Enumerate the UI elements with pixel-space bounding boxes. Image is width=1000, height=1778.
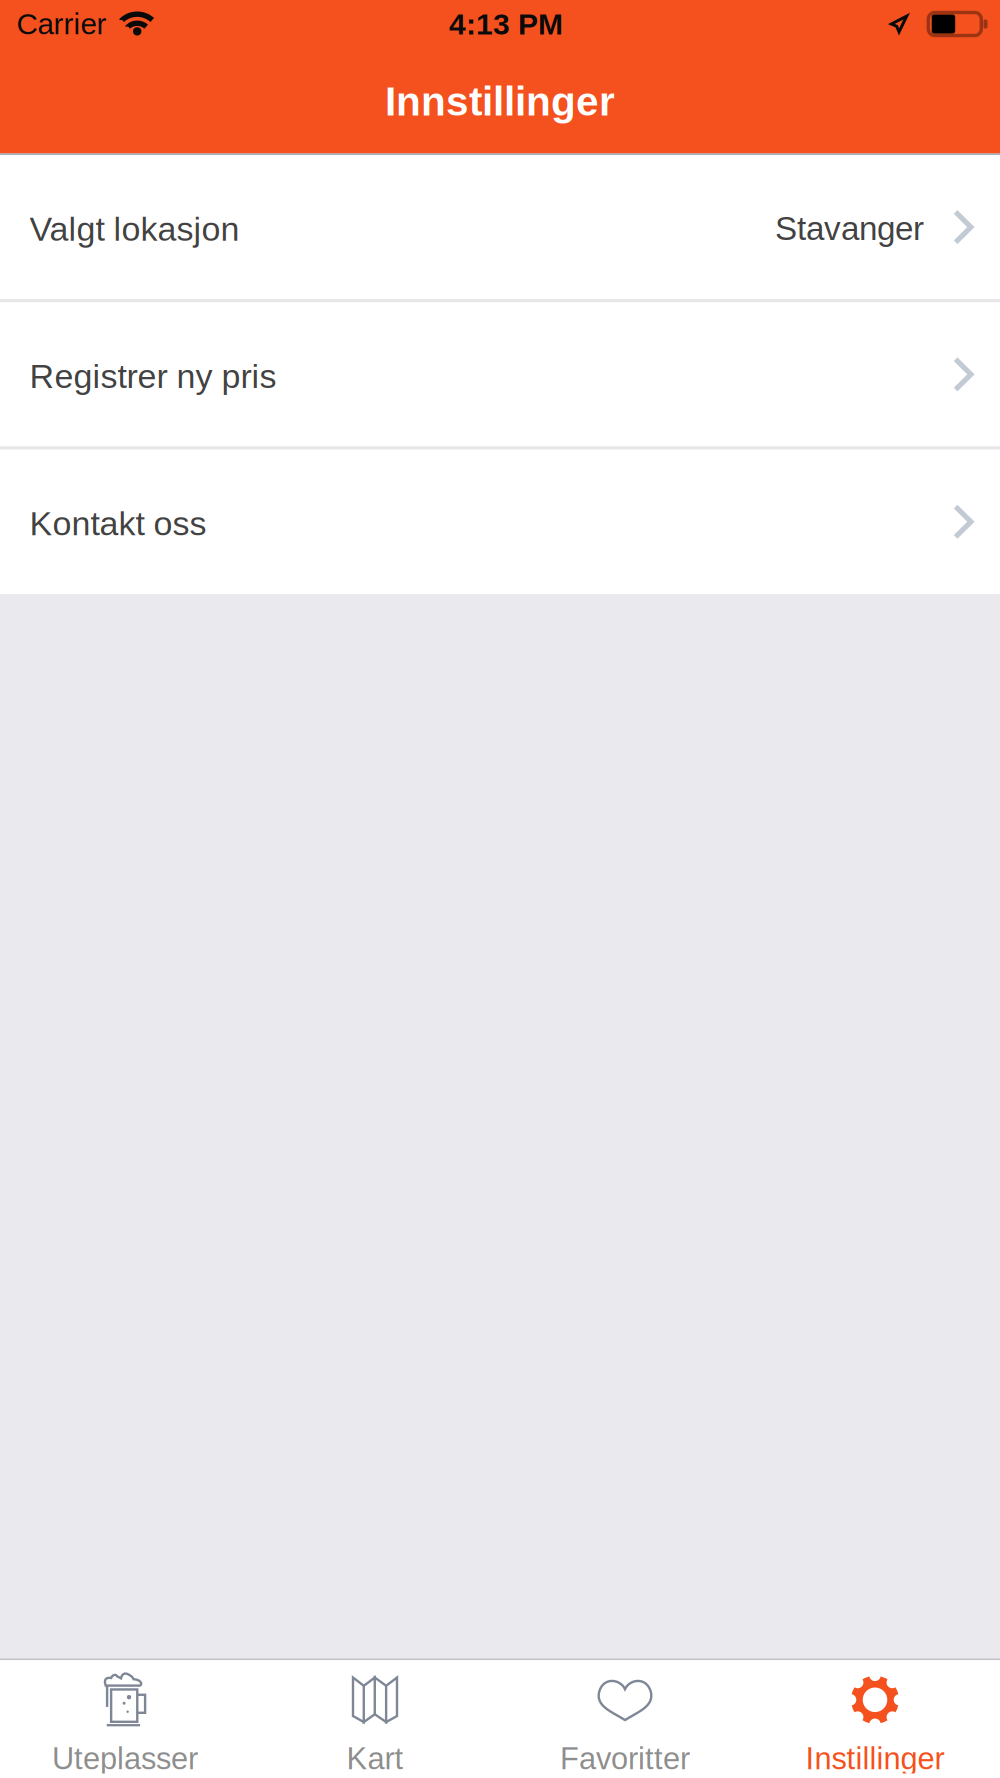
staticText: Registrer ny pris (29, 357, 276, 395)
staticText: Uteplasser (52, 1741, 198, 1776)
button[interactable]: Kart (250, 1660, 500, 1778)
staticText: Carrier (16, 7, 106, 41)
button[interactable]: Instillinger (750, 1660, 1000, 1778)
staticText: Kontakt oss (29, 505, 206, 543)
staticText: Kart (346, 1741, 403, 1776)
staticText: Innstillinger (385, 79, 615, 124)
staticText: Instillinger (805, 1741, 944, 1776)
button[interactable]: Registrer ny pris (0, 302, 1000, 446)
staticText: Favoritter (560, 1741, 690, 1776)
staticText: 4:13 PM (449, 7, 563, 41)
button[interactable]: Uteplasser (0, 1660, 250, 1778)
button[interactable]: Favoritter (500, 1660, 750, 1778)
button[interactable]: Kontakt oss (0, 449, 1000, 594)
button[interactable]: Valgt lokasjon (0, 155, 1000, 299)
staticText: Stavanger (775, 210, 924, 247)
staticText: Valgt lokasjon (29, 210, 239, 248)
